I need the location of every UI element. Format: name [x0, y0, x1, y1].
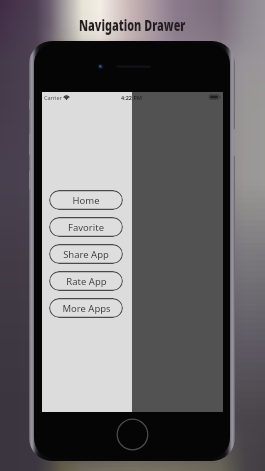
button[interactable]: More Apps: [49, 298, 123, 318]
button[interactable]: Rate App: [49, 271, 123, 291]
staticText: 4:22 PM: [121, 94, 143, 101]
staticText: Favorite: [68, 221, 104, 234]
staticText: Rate App: [66, 275, 107, 288]
button[interactable]: Home button: [116, 418, 149, 451]
staticText: More Apps: [62, 302, 111, 315]
button[interactable]: Share App: [49, 244, 123, 264]
staticText: Carrier: [44, 94, 62, 101]
staticText: Home: [72, 194, 100, 207]
button[interactable]: Favorite: [49, 217, 123, 237]
staticText: Navigation Drawer: [79, 14, 186, 35]
button[interactable]: Home: [49, 190, 123, 210]
staticText: Share App: [63, 248, 109, 261]
